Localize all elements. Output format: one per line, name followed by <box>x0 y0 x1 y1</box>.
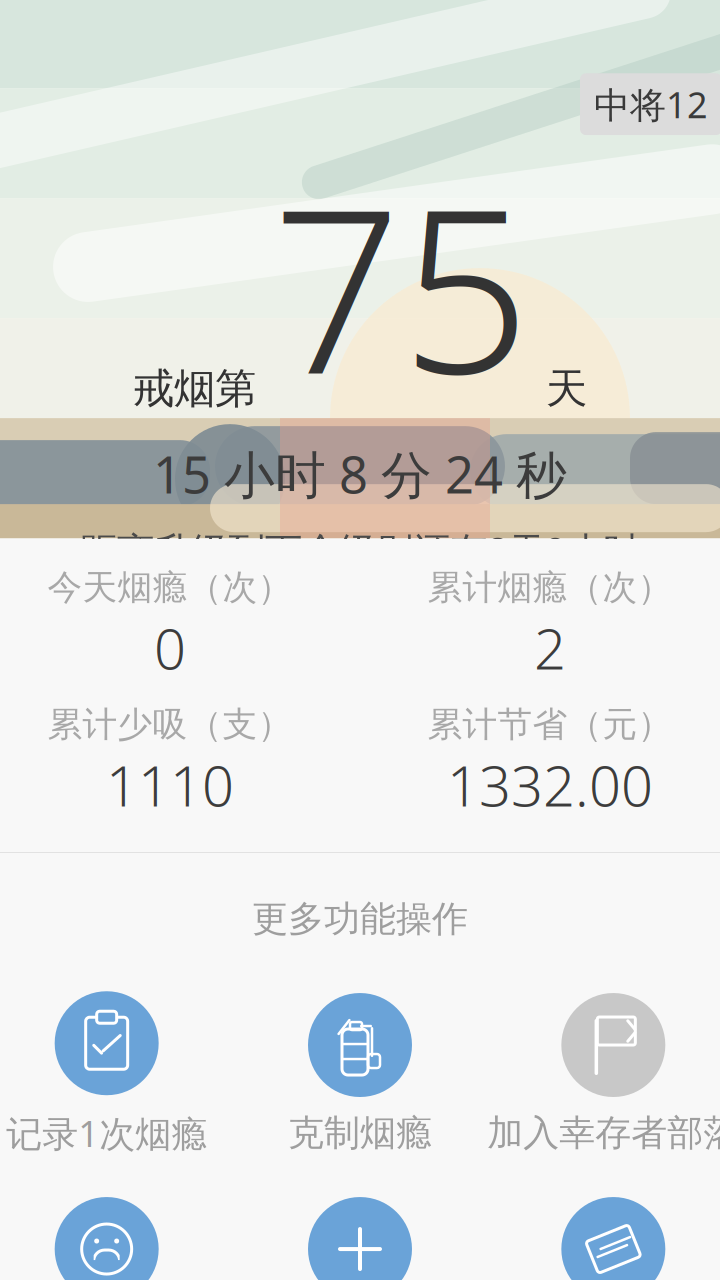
button[interactable]: 中将12 <box>580 73 720 135</box>
button[interactable]: 记录1次烟瘾 <box>0 985 233 1163</box>
staticText: 中将12 <box>594 80 708 128</box>
staticText: 记录1次烟瘾 <box>6 1109 207 1157</box>
staticText: 戒烟第 <box>133 363 256 414</box>
staticText: 1110 <box>106 748 234 822</box>
button[interactable]: 克制烟瘾 <box>233 987 487 1161</box>
staticText: 天 <box>546 363 587 414</box>
staticText: 1332.00 <box>447 748 653 822</box>
staticText: 更多功能操作 <box>252 897 468 941</box>
staticText: 15 小时 8 分 24 秒 <box>153 440 567 507</box>
staticText: 2 <box>534 611 566 685</box>
button[interactable]: 我的心情 <box>0 1191 233 1280</box>
staticText: 今天烟瘾（次） <box>47 566 292 609</box>
staticText: 累计节省（元） <box>427 703 672 746</box>
button[interactable]: 添加计划 <box>233 1191 487 1280</box>
staticText: 距离升级到下个级别还有8天9小时 <box>80 525 640 575</box>
button[interactable]: 加入幸存者部落 <box>487 987 720 1161</box>
staticText: 累计少吸（支） <box>47 703 292 746</box>
staticText: 75 <box>272 135 530 436</box>
staticText: 克制烟瘾 <box>288 1111 432 1155</box>
staticText: 0 <box>154 611 186 685</box>
staticText: 累计烟瘾（次） <box>427 566 672 609</box>
button[interactable]: 戒烟知识 <box>487 1191 720 1280</box>
staticText: 加入幸存者部落 <box>487 1111 720 1155</box>
